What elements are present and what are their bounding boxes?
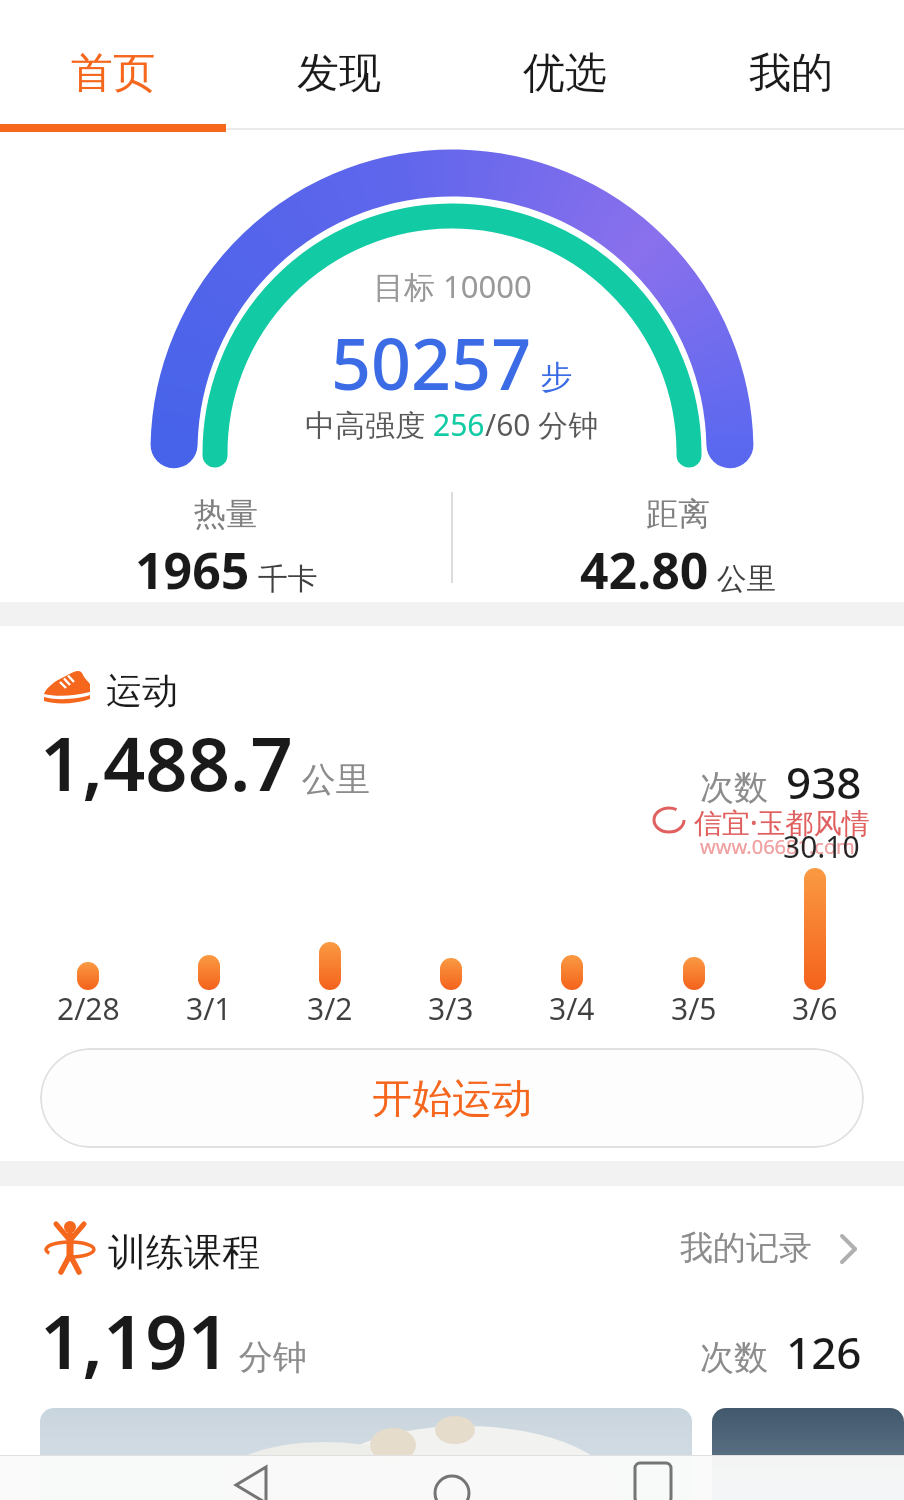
- staticText: 2/28: [57, 988, 120, 1029]
- staticText: 我的记录: [680, 1227, 812, 1269]
- staticText: 3/5: [671, 988, 717, 1029]
- button[interactable]: 开始运动: [40, 1048, 864, 1148]
- button[interactable]: 首页: [0, 25, 226, 121]
- staticText: 公里: [709, 557, 777, 598]
- staticText: 千卡: [250, 557, 318, 598]
- staticText: 首页: [71, 47, 155, 100]
- button[interactable]: [40, 1408, 692, 1500]
- staticText: 1,488.7: [40, 712, 293, 813]
- staticText: 3/3: [428, 988, 474, 1029]
- staticText: 次数: [700, 1333, 786, 1379]
- button[interactable]: [302, 1455, 603, 1500]
- staticText: 中高强度: [305, 404, 433, 445]
- staticText: 热量: [194, 494, 258, 534]
- staticText: /60 分钟: [485, 404, 599, 445]
- button[interactable]: [0, 1455, 302, 1500]
- staticText: 步: [532, 354, 573, 398]
- staticText: 我的: [749, 47, 833, 100]
- staticText: 距离: [646, 494, 710, 534]
- button[interactable]: 我的: [678, 25, 904, 121]
- button[interactable]: 优选: [452, 25, 678, 121]
- staticText: 优选: [523, 47, 607, 100]
- staticText: 次数: [700, 763, 786, 809]
- staticText: 分钟: [230, 1333, 307, 1379]
- button[interactable]: 发现: [226, 25, 452, 121]
- staticText: 信宜·玉都风情: [694, 803, 870, 841]
- staticText: 938: [786, 752, 862, 812]
- staticText: 1,191: [40, 1290, 230, 1391]
- staticText: 3/1: [186, 988, 232, 1029]
- staticText: 发现: [297, 47, 381, 100]
- staticText: 公里: [293, 755, 370, 801]
- staticText: 126: [786, 1322, 862, 1382]
- staticText: 开始运动: [372, 1073, 532, 1123]
- staticText: 运动: [106, 668, 178, 713]
- button[interactable]: 我的记录: [680, 1226, 812, 1270]
- staticText: 30.10: [783, 826, 860, 867]
- staticText: 3/2: [307, 988, 353, 1029]
- staticText: 42.80: [580, 536, 709, 604]
- button[interactable]: [712, 1408, 904, 1500]
- staticText: 3/6: [792, 988, 838, 1029]
- staticText: 3/4: [549, 988, 595, 1029]
- staticText: 目标 10000: [373, 265, 532, 307]
- staticText: www.06681.com: [700, 833, 855, 860]
- staticText: 1965: [135, 536, 250, 604]
- staticText: 50257: [331, 315, 532, 410]
- staticText: 训练课程: [108, 1228, 260, 1276]
- button[interactable]: [603, 1455, 904, 1500]
- staticText: 256: [433, 404, 485, 445]
